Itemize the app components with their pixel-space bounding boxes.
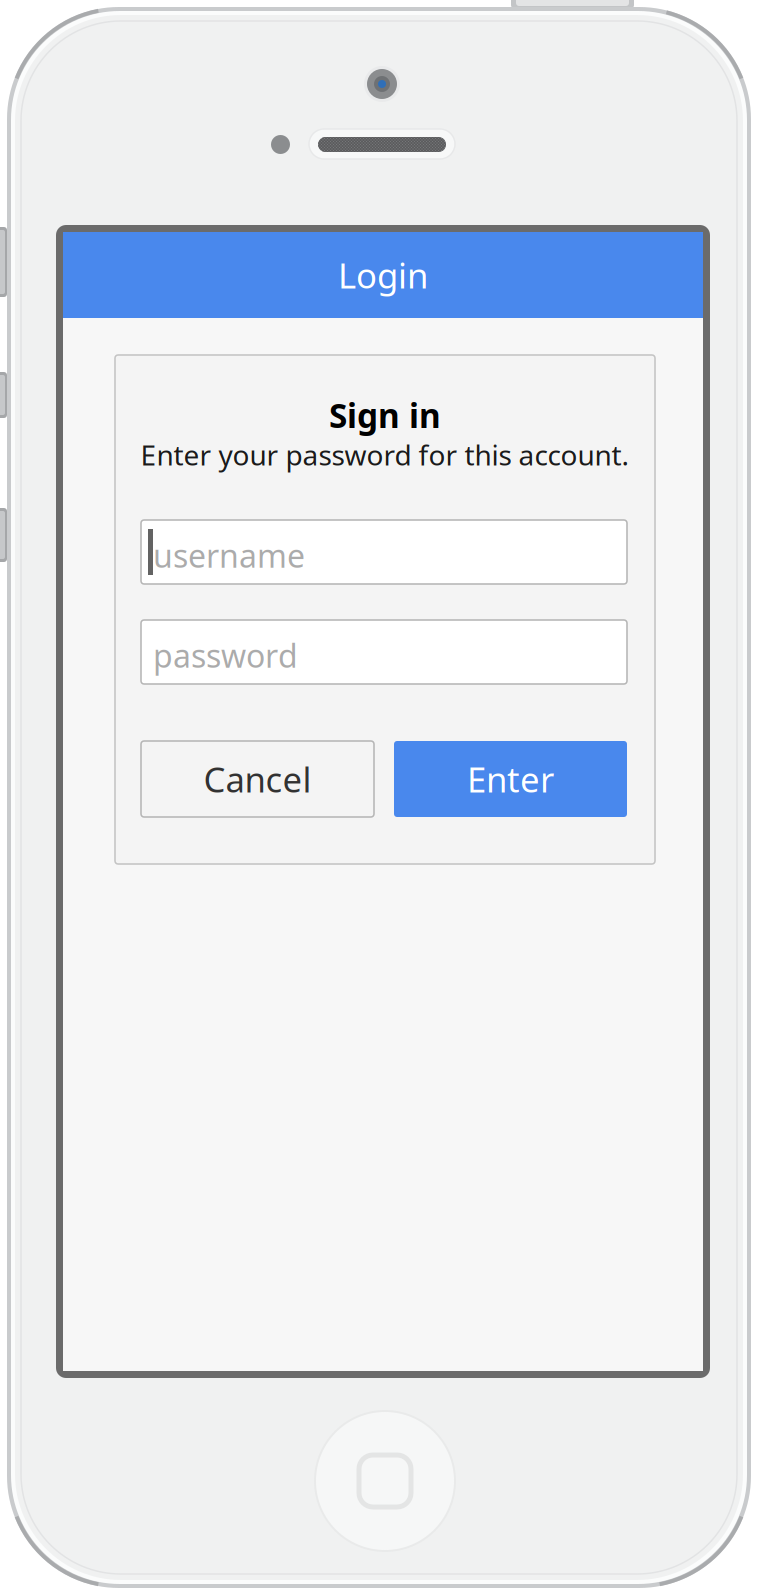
staticText: Enter your password for this account.	[140, 436, 629, 473]
staticText: username	[153, 534, 305, 576]
button[interactable]: Cancel	[141, 741, 374, 817]
staticText: password	[153, 634, 298, 676]
staticText: Login	[338, 252, 428, 298]
button[interactable]: Home	[315, 1411, 455, 1551]
button[interactable]: username	[141, 520, 627, 584]
staticText: Enter	[467, 756, 554, 802]
button[interactable]: Enter	[394, 741, 627, 817]
staticText: Sign in	[329, 393, 441, 437]
staticText: Cancel	[203, 756, 311, 802]
button[interactable]: password	[141, 620, 627, 684]
